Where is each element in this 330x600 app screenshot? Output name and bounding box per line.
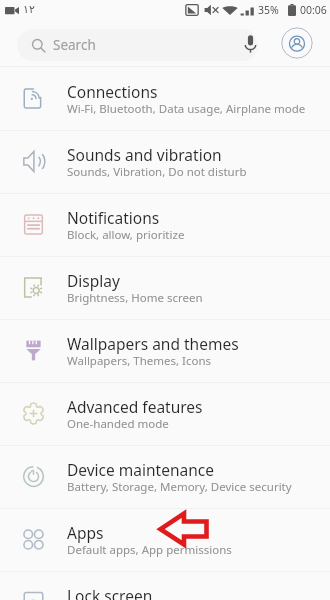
staticText: Block, allow, prioritize (67, 227, 185, 243)
button[interactable]: Device maintenance (0, 445, 330, 508)
staticText: Device maintenance (67, 459, 214, 480)
staticText: Lock screen (67, 585, 153, 600)
staticText: Sounds and vibration (67, 144, 222, 165)
button[interactable]: Sounds and vibration (0, 130, 330, 193)
button[interactable]: Lock screen (0, 571, 330, 600)
staticText: Connections (67, 81, 158, 102)
button[interactable]: Advanced features (0, 382, 330, 445)
staticText: 00:06 (300, 3, 327, 17)
staticText: Wallpapers and themes (67, 333, 239, 354)
staticText: Wallpapers, Themes, Icons (67, 353, 212, 369)
button[interactable]: Display (0, 256, 330, 319)
button[interactable]: Account (281, 27, 313, 59)
staticText: Sounds, Vibration, Do not disturb (67, 164, 247, 180)
staticText: Advanced features (67, 396, 203, 417)
staticText: 35% (258, 3, 279, 17)
staticText: Display (67, 270, 120, 291)
staticText: One-handed mode (67, 416, 169, 432)
staticText: Default apps, App permissions (67, 542, 232, 558)
button[interactable]: Search (17, 29, 258, 61)
staticText: Brightness, Home screen (67, 290, 203, 306)
staticText: Notifications (67, 207, 160, 228)
button[interactable]: Notifications (0, 193, 330, 256)
button[interactable]: Voice search (238, 32, 262, 56)
staticText: ١٢ (23, 3, 35, 16)
button[interactable]: Connections (0, 67, 330, 130)
button[interactable]: Wallpapers and themes (0, 319, 330, 382)
staticText: Wi-Fi, Bluetooth, Data usage, Airplane m… (67, 101, 306, 117)
staticText: Battery, Storage, Memory, Device securit… (67, 479, 292, 495)
staticText: Apps (67, 522, 104, 543)
staticText: Search (53, 36, 96, 54)
button[interactable]: Apps (0, 508, 330, 571)
